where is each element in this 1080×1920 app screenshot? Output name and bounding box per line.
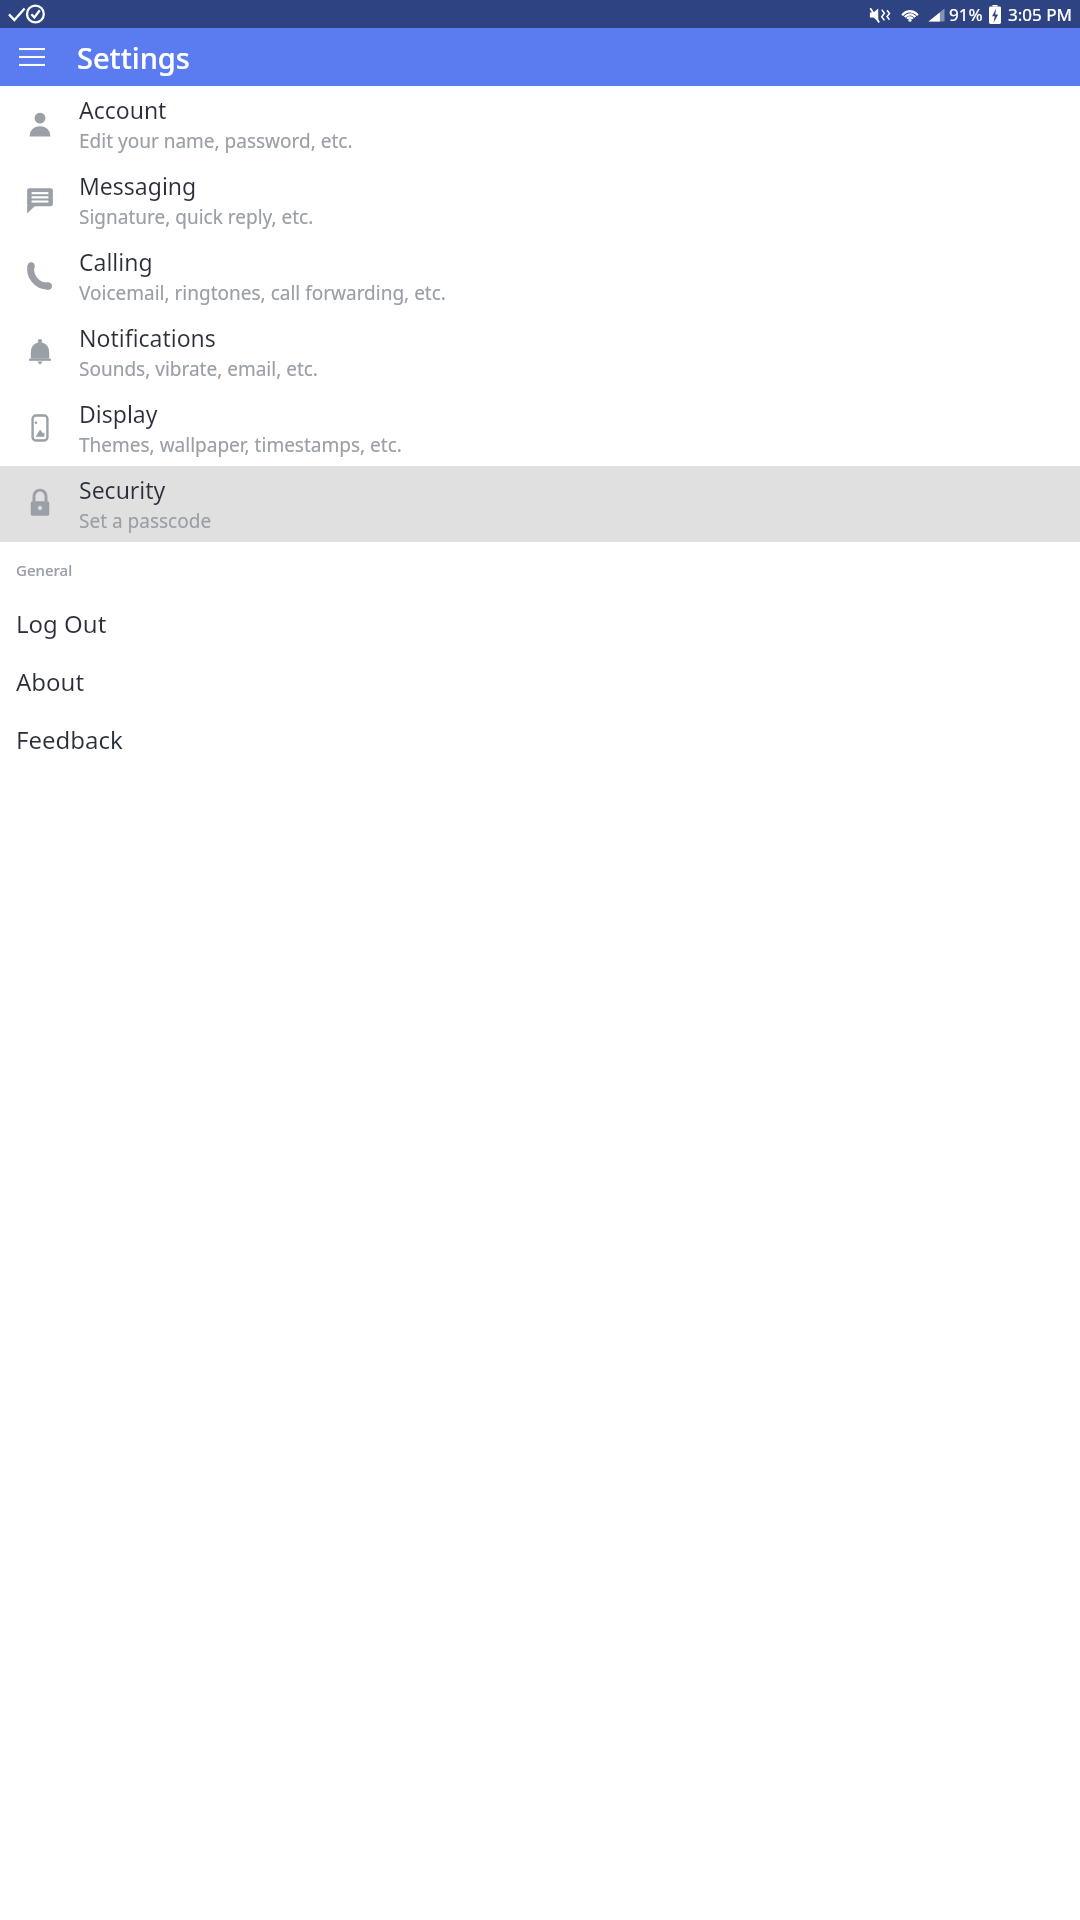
- staticText: Signature, quick reply, etc.: [79, 204, 314, 230]
- staticText: 3:05 PM: [1008, 3, 1072, 26]
- staticText: Themes, wallpaper, timestamps, etc.: [79, 432, 402, 458]
- button[interactable]: Calling: [0, 238, 1080, 314]
- button[interactable]: Notifications: [0, 314, 1080, 390]
- staticText: Account: [79, 94, 167, 125]
- staticText: 91%: [949, 3, 983, 26]
- staticText: Security: [79, 474, 166, 505]
- button[interactable]: Account: [0, 86, 1080, 162]
- staticText: Messaging: [79, 170, 197, 201]
- staticText: General: [16, 560, 73, 580]
- button[interactable]: Security: [0, 466, 1080, 542]
- staticText: Display: [79, 398, 158, 429]
- button[interactable]: Display: [0, 390, 1080, 466]
- staticText: Calling: [79, 246, 153, 277]
- staticText: Set a passcode: [79, 508, 212, 534]
- staticText: Voicemail, ringtones, call forwarding, e…: [79, 280, 446, 306]
- staticText: Sounds, vibrate, email, etc.: [79, 356, 318, 382]
- staticText: Feedback: [16, 723, 123, 756]
- button[interactable]: Messaging: [0, 162, 1080, 238]
- button[interactable]: Feedback: [0, 710, 1080, 768]
- staticText: Log Out: [16, 607, 107, 640]
- staticText: Notifications: [79, 322, 216, 353]
- button[interactable]: Open navigation menu: [8, 33, 56, 81]
- button[interactable]: About: [0, 652, 1080, 710]
- staticText: Edit your name, password, etc.: [79, 128, 353, 154]
- staticText: Settings: [77, 38, 190, 77]
- staticText: About: [16, 665, 85, 698]
- button[interactable]: Log Out: [0, 594, 1080, 652]
